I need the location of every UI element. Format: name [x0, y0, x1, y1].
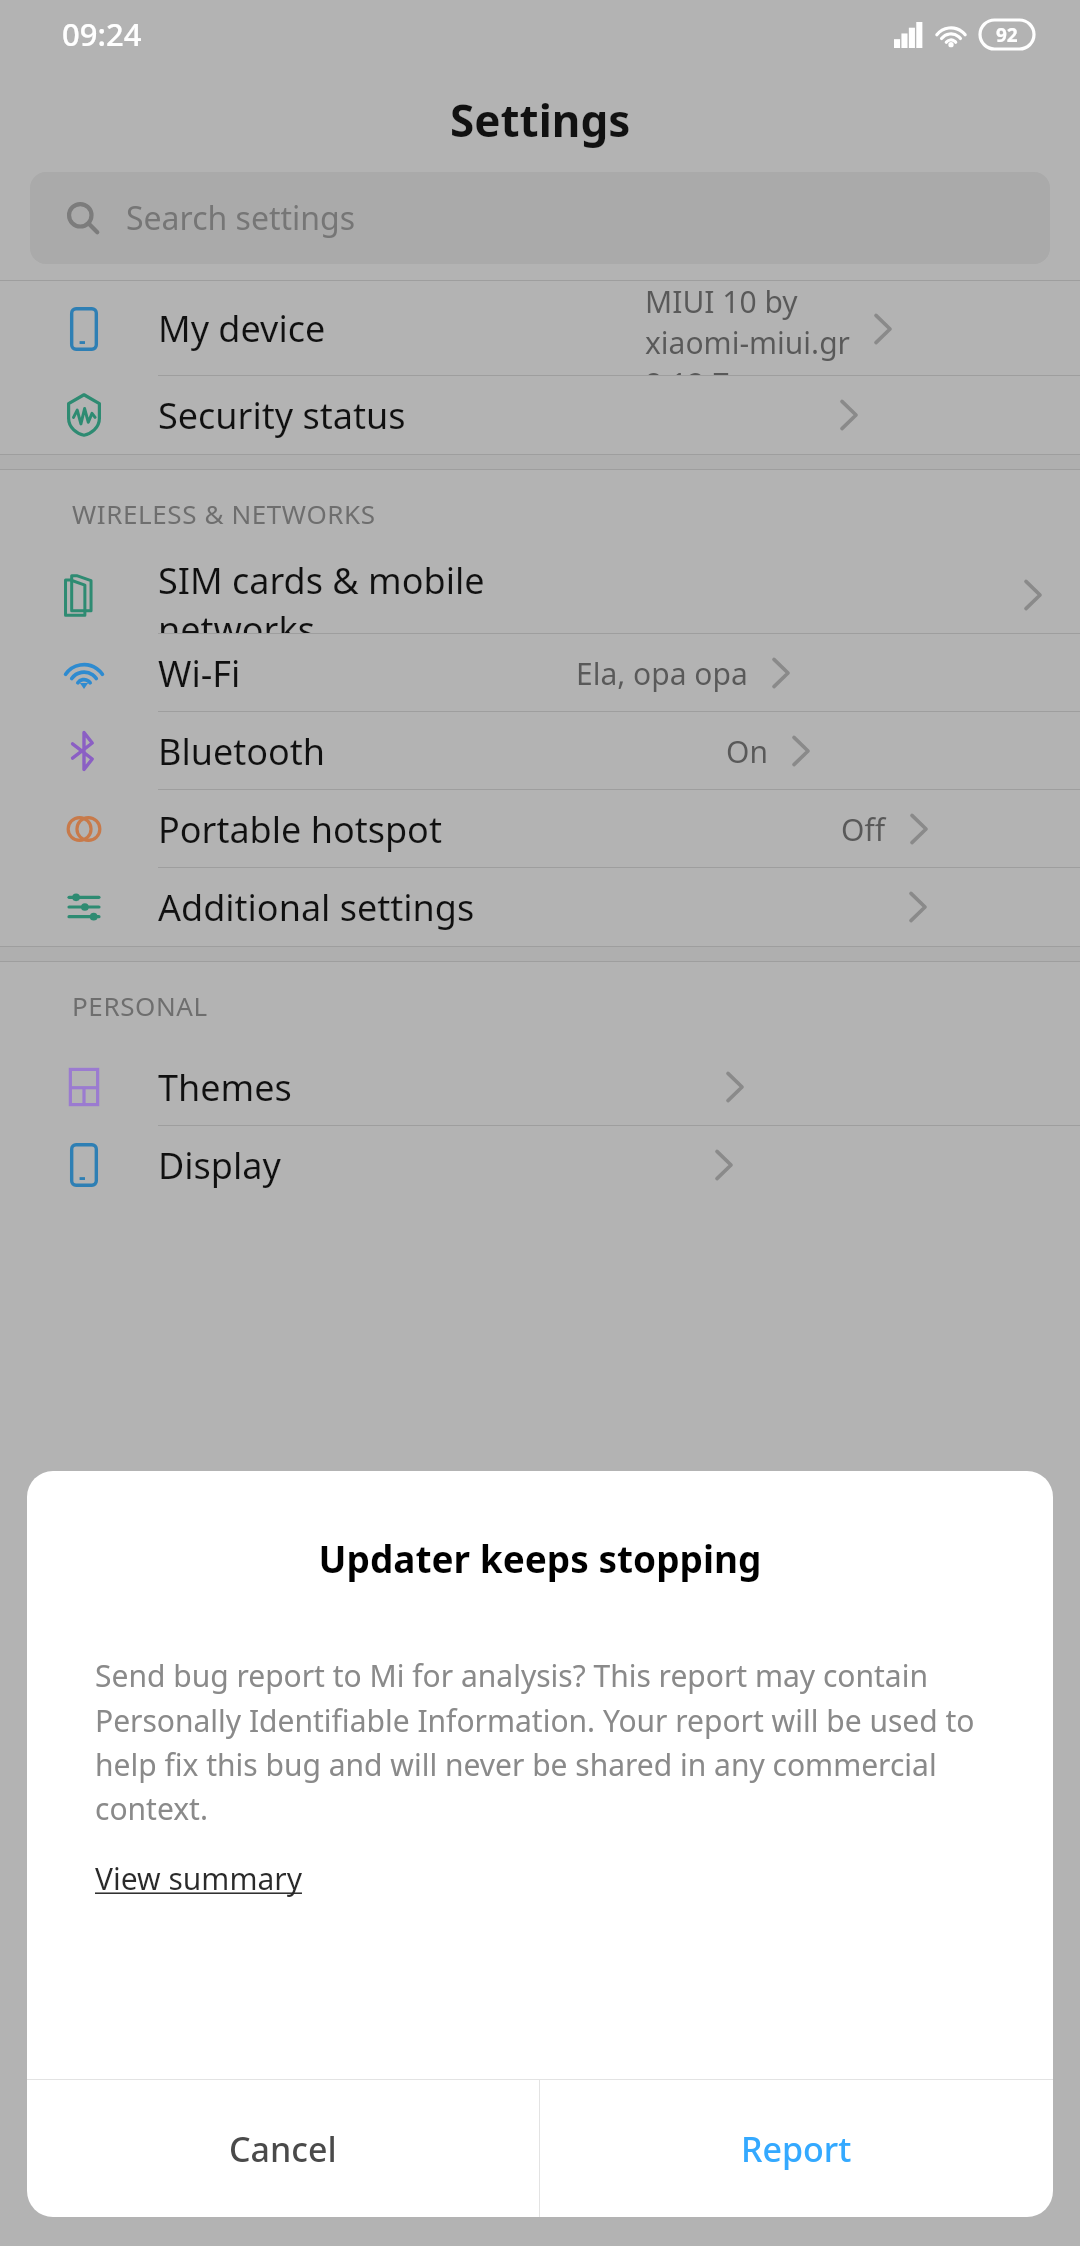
- staticText: Wi-Fi: [158, 649, 241, 698]
- button[interactable]: Display: [0, 1126, 1080, 1204]
- staticText: Ela, opa opa: [576, 653, 748, 694]
- staticText: Send bug report to Mi for analysis? This…: [95, 1655, 985, 1828]
- button[interactable]: SIM cards & mobile networks: [0, 556, 1080, 634]
- button[interactable]: My device: [0, 281, 1080, 376]
- staticText: Search settings: [126, 196, 356, 240]
- button[interactable]: Cancel: [27, 2080, 539, 2217]
- button[interactable]: Themes: [0, 1048, 1080, 1126]
- staticText: Display: [158, 1141, 281, 1190]
- button[interactable]: View summary: [95, 1858, 302, 1899]
- staticText: PERSONAL: [72, 988, 208, 1023]
- staticText: 09:24: [62, 13, 142, 55]
- staticText: Cancel: [229, 2126, 337, 2172]
- button[interactable]: Security status: [0, 376, 1080, 454]
- staticText: Settings: [450, 90, 631, 150]
- staticText: My device: [158, 304, 326, 353]
- staticText: SIM cards & mobile networks: [158, 556, 590, 634]
- staticText: Portable hotspot: [158, 805, 442, 854]
- button[interactable]: Portable hotspot: [0, 790, 1080, 868]
- staticText: Report: [741, 2126, 852, 2172]
- button[interactable]: Bluetooth: [0, 712, 1080, 790]
- staticText: On: [726, 731, 768, 772]
- staticText: Bluetooth: [158, 727, 326, 776]
- staticText: WIRELESS & NETWORKS: [72, 496, 376, 531]
- staticText: Updater keeps stopping: [27, 1533, 1053, 1583]
- staticText: Off: [841, 809, 886, 850]
- staticText: MIUI 10 by: [645, 281, 798, 322]
- staticText: Security status: [158, 391, 406, 440]
- staticText: 8.12.7: [645, 363, 730, 376]
- button[interactable]: Search settings: [30, 172, 1050, 264]
- staticText: View summary: [95, 1858, 302, 1899]
- staticText: Themes: [158, 1063, 292, 1112]
- button[interactable]: Wi-Fi: [0, 634, 1080, 712]
- staticText: 92: [996, 22, 1018, 48]
- staticText: Additional settings: [158, 883, 475, 932]
- button[interactable]: Report: [540, 2080, 1053, 2217]
- staticText: xiaomi-miui.gr: [645, 322, 850, 363]
- button[interactable]: Additional settings: [0, 868, 1080, 946]
